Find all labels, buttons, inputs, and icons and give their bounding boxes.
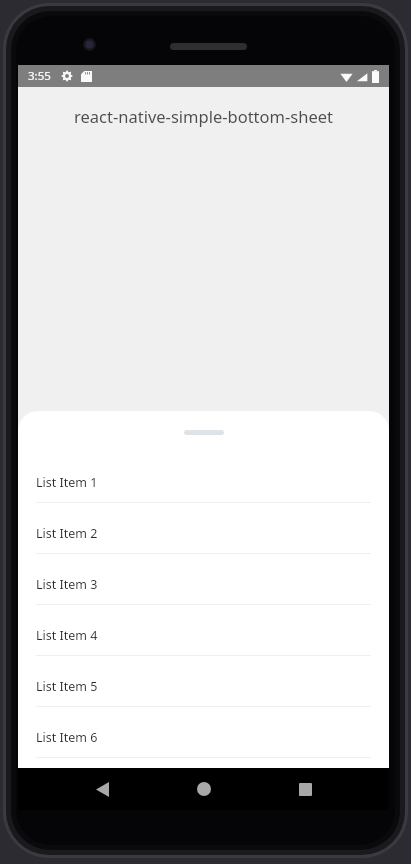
staticText: List Item 5 [36, 678, 98, 695]
button[interactable]: List Item 5 [18, 666, 389, 717]
button[interactable]: List Item 3 [18, 564, 389, 615]
staticText: react-native-simple-bottom-sheet [74, 105, 333, 127]
button[interactable]: Home [184, 769, 224, 809]
staticText: List Item 3 [36, 576, 98, 593]
staticText: List Item 1 [36, 474, 98, 491]
staticText: 3:55 [28, 68, 51, 84]
button[interactable] [18, 411, 389, 451]
button[interactable]: List Item 2 [18, 513, 389, 564]
button[interactable]: List Item 4 [18, 615, 389, 666]
staticText: List Item 6 [36, 729, 98, 746]
button[interactable]: List Item 6 [18, 717, 389, 768]
button[interactable]: List Item 1 [18, 462, 389, 513]
staticText: List Item 4 [36, 627, 98, 644]
button[interactable]: Recent apps [285, 769, 325, 809]
staticText: List Item 2 [36, 525, 98, 542]
button[interactable]: Back [82, 769, 122, 809]
